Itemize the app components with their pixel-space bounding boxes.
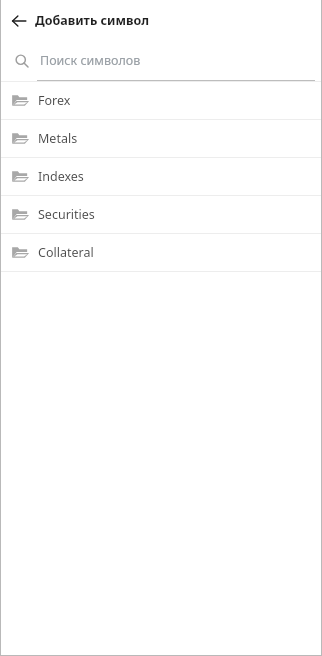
staticText: Securities [38,206,95,223]
button[interactable]: Forex [0,82,322,119]
staticText: Forex [38,92,71,109]
staticText: Collateral [38,244,94,261]
button[interactable]: Indexes [0,158,322,195]
button[interactable]: Securities [0,196,322,233]
staticText: Metals [38,130,78,147]
button[interactable]: Поиск символов [0,41,322,81]
button[interactable]: Back [7,9,31,33]
staticText: Поиск символов [40,52,141,69]
button[interactable]: Metals [0,120,322,157]
button[interactable]: Collateral [0,234,322,271]
staticText: Добавить символ [35,12,149,29]
staticText: Indexes [38,168,84,185]
